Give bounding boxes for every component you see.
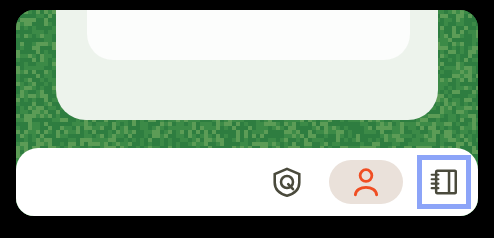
button[interactable]: Notebook: [422, 160, 466, 204]
button[interactable]: Profile: [329, 160, 403, 204]
button[interactable]: Security: [259, 154, 315, 210]
